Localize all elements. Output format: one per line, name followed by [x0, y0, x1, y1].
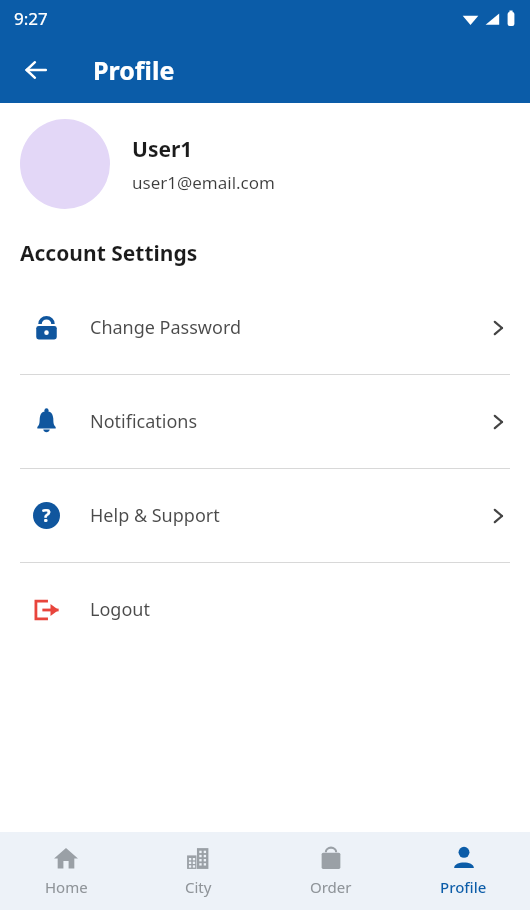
staticText: User1: [132, 135, 193, 164]
staticText: Notifications: [90, 409, 488, 434]
staticText: City: [185, 877, 212, 897]
staticText: Profile: [440, 877, 487, 897]
staticText: Change Password: [90, 315, 488, 340]
button[interactable]: Order: [264, 832, 397, 910]
button[interactable]: ?: [0, 469, 530, 562]
button[interactable]: Home: [0, 832, 132, 910]
staticText: Home: [45, 877, 88, 897]
staticText: Help & Support: [90, 503, 488, 528]
staticText: 9:27: [14, 7, 48, 30]
button[interactable]: Profile: [397, 832, 530, 910]
button[interactable]: Notifications: [0, 375, 530, 468]
button[interactable]: Change Password: [0, 281, 530, 374]
staticText: Profile: [93, 53, 175, 87]
staticText: ?: [42, 503, 51, 528]
button[interactable]: Back: [12, 46, 60, 94]
staticText: Logout: [90, 597, 150, 622]
staticText: Account Settings: [20, 239, 198, 268]
staticText: Order: [310, 877, 352, 897]
button[interactable]: Logout: [0, 563, 530, 656]
staticText: user1@email.com: [132, 171, 275, 194]
button[interactable]: City: [132, 832, 264, 910]
